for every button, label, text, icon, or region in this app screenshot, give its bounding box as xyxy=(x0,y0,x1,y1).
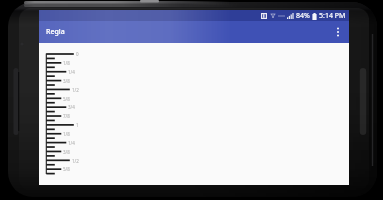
staticText: 1/8 xyxy=(63,131,70,137)
staticText: Regla xyxy=(46,27,65,37)
staticText: 1/2 xyxy=(72,158,79,164)
staticText: 1/2 xyxy=(72,87,79,93)
button[interactable]: Ruler xyxy=(39,43,349,185)
staticText: 1 xyxy=(76,122,79,128)
staticText: 5/8 xyxy=(63,166,70,172)
button[interactable]: More options xyxy=(330,24,346,40)
staticText: 5:14 PM xyxy=(319,11,346,21)
staticText: 1/4 xyxy=(68,69,75,75)
staticText: 1/8 xyxy=(63,60,70,66)
staticText: 1/4 xyxy=(68,140,75,146)
staticText: 7/8 xyxy=(63,113,70,119)
staticText: 3/4 xyxy=(68,104,75,110)
staticText: 3/8 xyxy=(63,149,70,155)
staticText: 5/8 xyxy=(63,96,70,102)
staticText: 0 xyxy=(76,51,79,57)
staticText: 84% xyxy=(296,11,310,21)
staticText: 3/8 xyxy=(63,78,70,84)
